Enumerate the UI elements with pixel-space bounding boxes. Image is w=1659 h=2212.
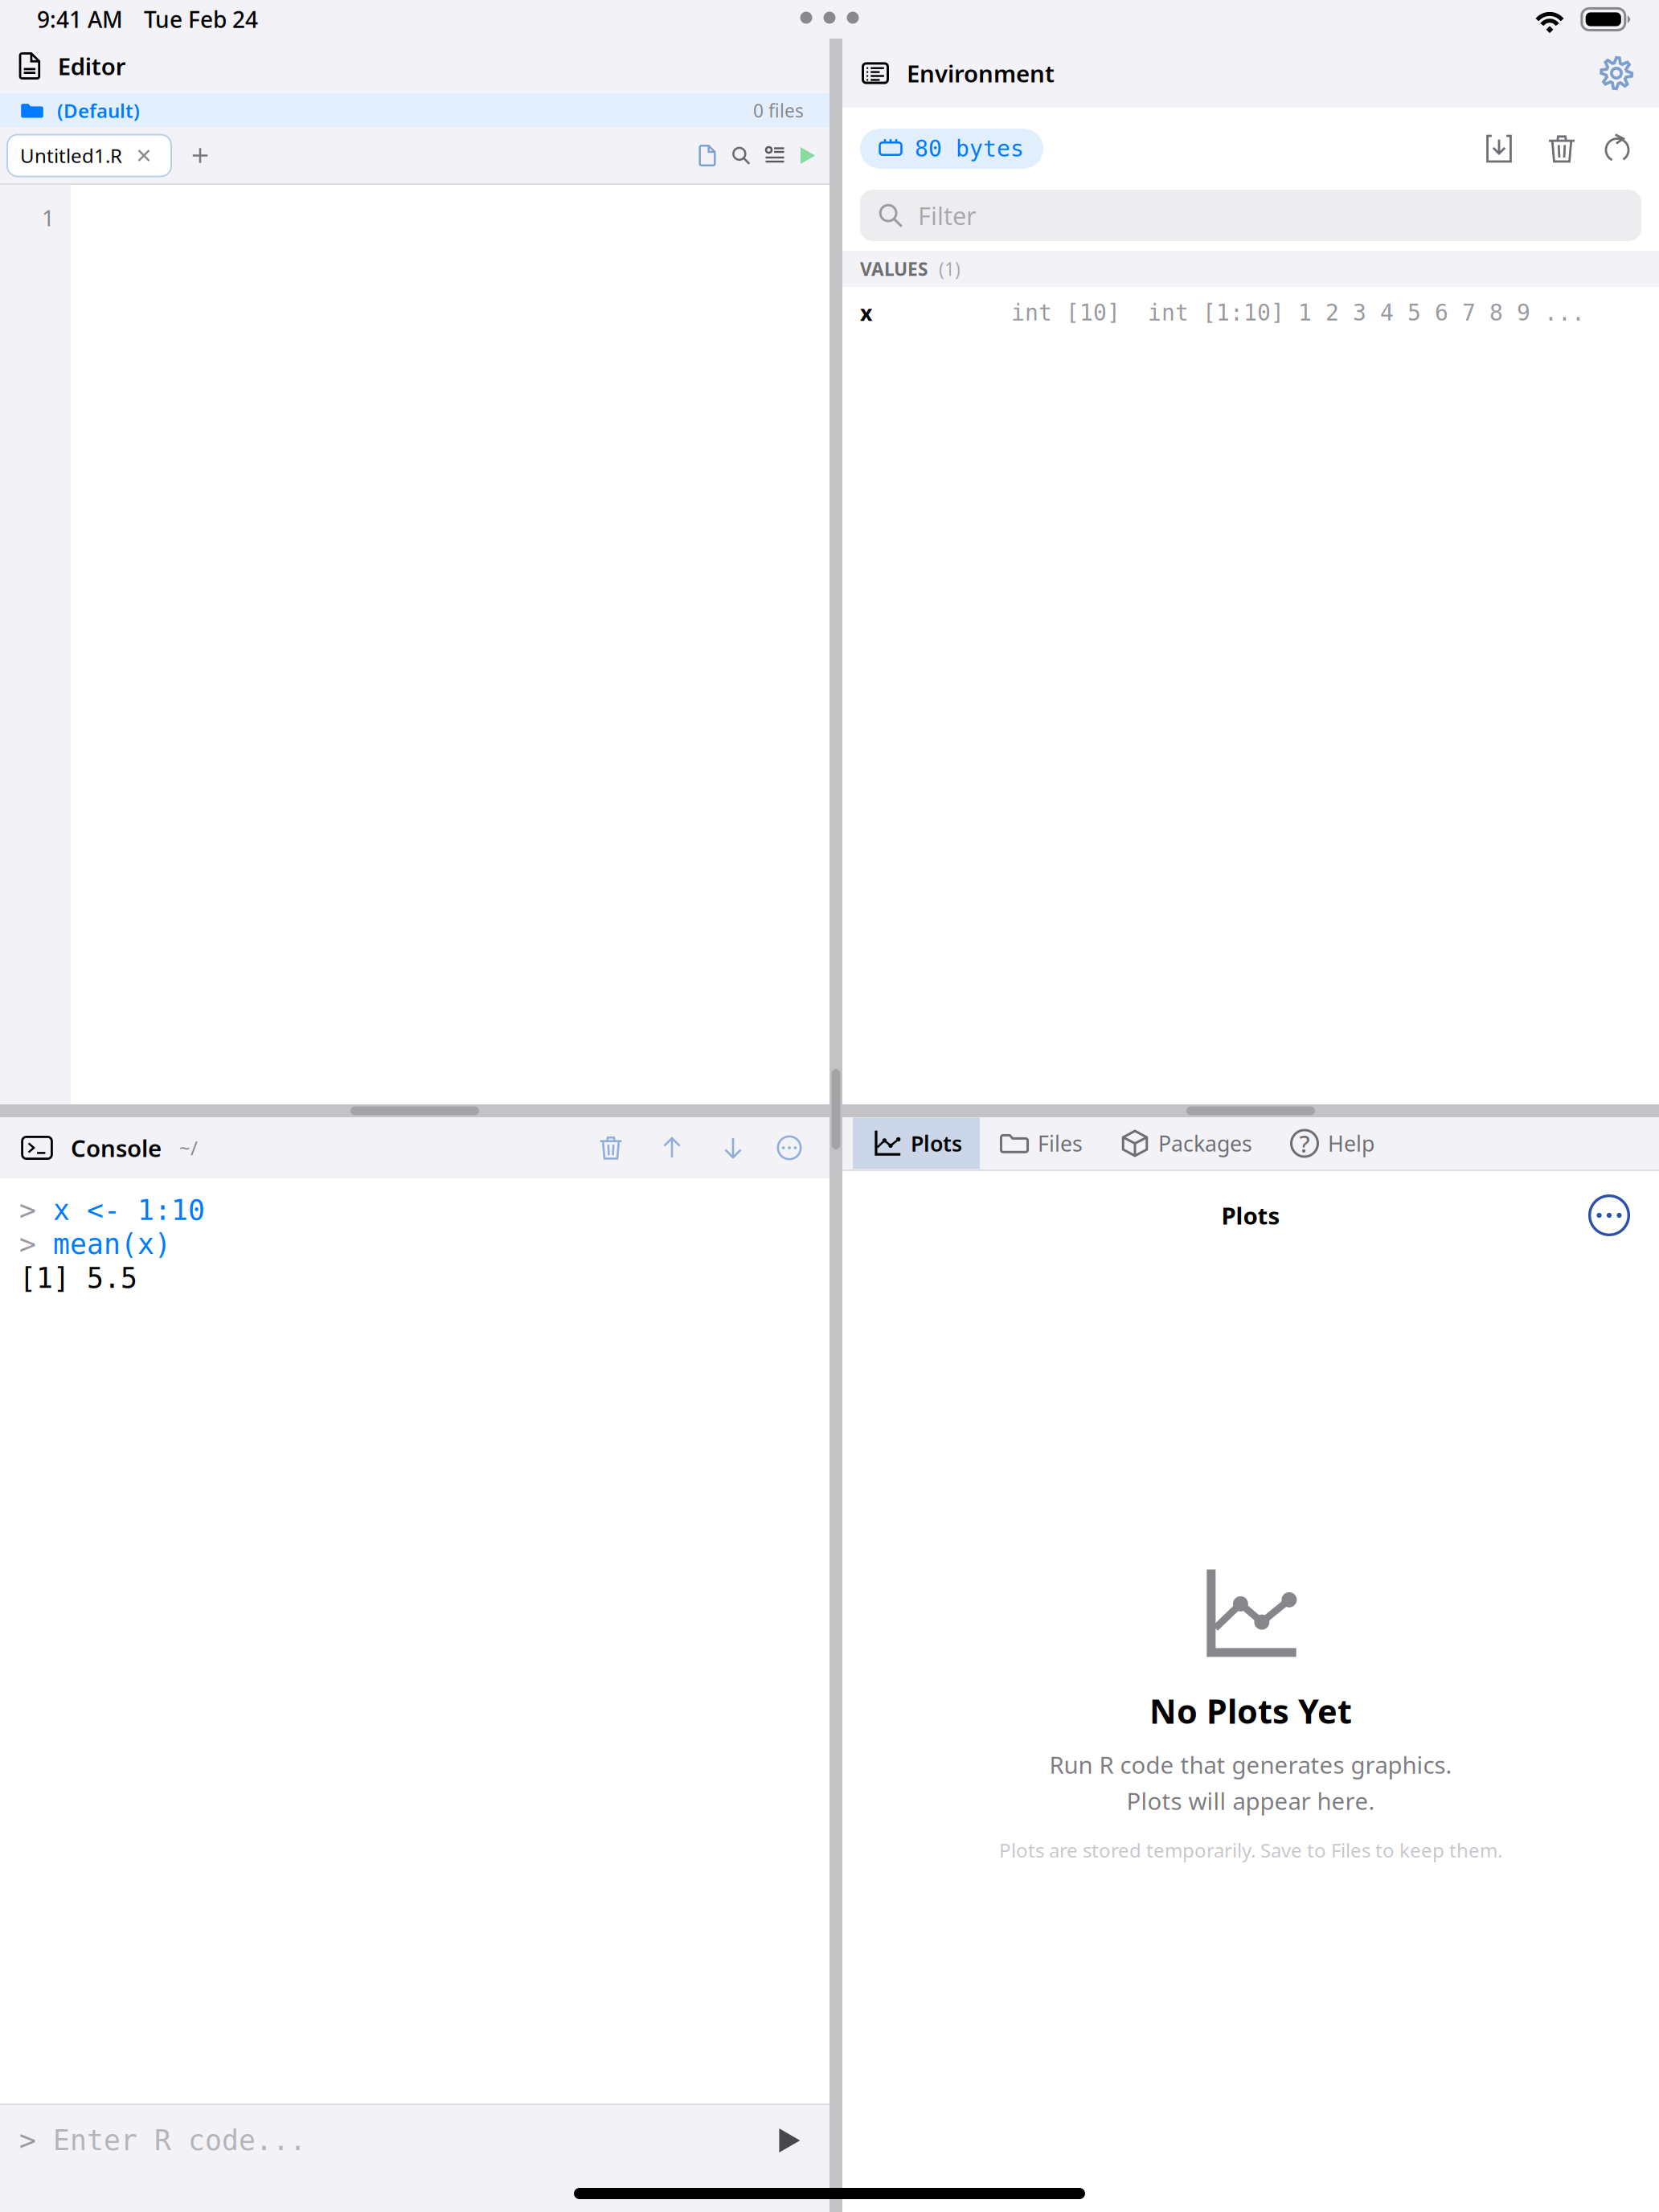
- staticText: Plots: [1221, 1200, 1280, 1231]
- button[interactable]: Find: [724, 128, 758, 183]
- staticText: 1: [42, 203, 55, 232]
- staticText: Enter R code...: [53, 2125, 306, 2156]
- staticText: >: [19, 2125, 53, 2156]
- button[interactable]: New document: [690, 128, 724, 183]
- staticText: Editor: [58, 50, 126, 82]
- staticText: (Default): [57, 98, 140, 123]
- staticText: Untitled1.R: [20, 143, 122, 168]
- button[interactable]: Refresh: [1593, 117, 1641, 181]
- staticText: VALUES: [860, 257, 928, 281]
- button[interactable]: More: [764, 1117, 815, 1178]
- staticText: >: [19, 1228, 53, 1260]
- staticText: Plots will appear here.: [1126, 1785, 1375, 1816]
- staticText: Files: [1038, 1129, 1083, 1158]
- staticText: x: [860, 298, 872, 327]
- button[interactable]: New file: [171, 128, 229, 183]
- staticText: ?: [1299, 1128, 1310, 1159]
- button[interactable]: Run: [792, 128, 822, 183]
- button[interactable]: (Default): [0, 93, 829, 128]
- staticText: ~/: [179, 1135, 198, 1161]
- staticText: x <- 1:10: [53, 1194, 205, 1226]
- staticText: mean(x): [53, 1228, 171, 1260]
- button[interactable]: Clear console: [580, 1117, 641, 1178]
- staticText: 80 bytes: [915, 136, 1024, 161]
- staticText: Filter: [918, 199, 977, 232]
- button[interactable]: Previous command: [641, 1117, 703, 1178]
- button[interactable]: Plot options: [1574, 1180, 1645, 1251]
- staticText: Help: [1328, 1129, 1374, 1158]
- staticText: (1): [939, 257, 961, 281]
- staticText: Environment: [907, 57, 1055, 89]
- staticText: Run R code that generates graphics.: [1049, 1749, 1452, 1780]
- button[interactable]: ?: [1270, 1118, 1392, 1169]
- staticText: Packages: [1158, 1129, 1252, 1158]
- staticText: Console: [71, 1132, 162, 1163]
- button[interactable]: Clear environment: [1530, 117, 1593, 181]
- button[interactable]: Plots: [853, 1118, 980, 1169]
- staticText: Tue Feb 24: [144, 4, 258, 34]
- button[interactable]: Files: [980, 1118, 1100, 1169]
- staticText: >: [19, 1194, 53, 1226]
- button[interactable]: Export environment: [1468, 117, 1530, 181]
- staticText: [1] 5.5: [19, 1262, 137, 1294]
- button[interactable]: Environment settings: [1588, 39, 1645, 108]
- button[interactable]: Untitled1.R: [7, 135, 171, 176]
- staticText: Plots: [911, 1129, 962, 1158]
- button[interactable]: Packages: [1100, 1118, 1270, 1169]
- staticText: 9:41 AM: [37, 4, 123, 34]
- staticText: No Plots Yet: [1149, 1689, 1352, 1733]
- button[interactable]: Run code: [759, 2105, 818, 2176]
- staticText: 0 files: [753, 98, 804, 123]
- button[interactable]: Next command: [703, 1117, 764, 1178]
- staticText: Plots are stored temporarily. Save to Fi…: [999, 1837, 1502, 1863]
- button[interactable]: Insert snippet: [758, 128, 792, 183]
- staticText: int [10] int [1:10] 1 2 3 4 5 6 7 8 9 ..…: [1011, 300, 1585, 325]
